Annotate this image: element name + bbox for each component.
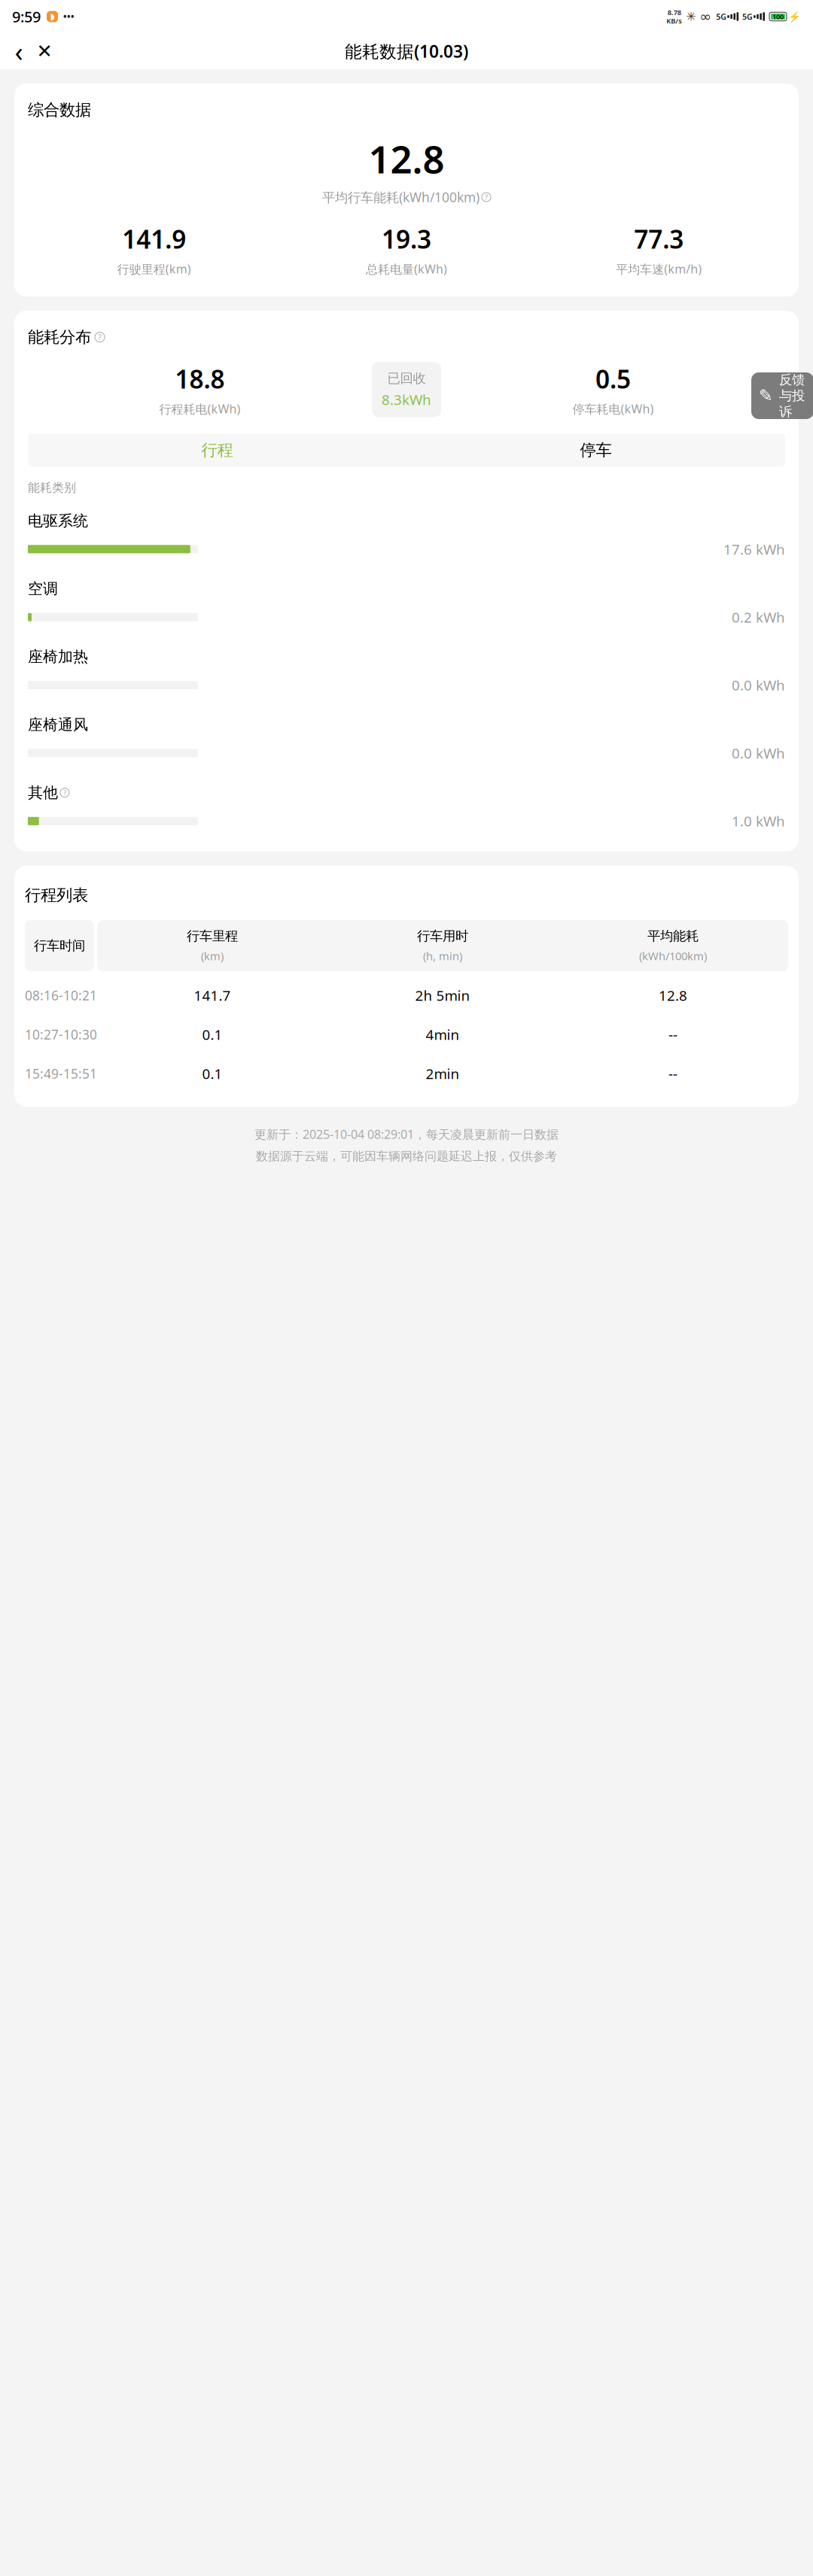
button[interactable]: 行程 xyxy=(28,434,406,467)
staticText: ••• xyxy=(63,11,75,22)
staticText: 数据源于云端，可能因车辆网络问题延迟上报，仅供参考 xyxy=(256,1149,557,1164)
button[interactable]: 反馈与投诉 xyxy=(751,372,813,419)
staticText: 行程 xyxy=(201,440,233,460)
staticText: 8.78 xyxy=(667,8,681,17)
staticText: 2h 5min xyxy=(415,986,470,1005)
staticText: ? xyxy=(98,332,102,342)
staticText: 2min xyxy=(426,1064,460,1083)
staticText: ✎ xyxy=(759,386,773,405)
staticText: 08:16-10:21 xyxy=(25,987,97,1004)
staticText: 18.8 xyxy=(175,362,225,396)
staticText: ✳ xyxy=(686,10,696,23)
staticText: 12.8 xyxy=(659,986,687,1005)
staticText: 综合数据 xyxy=(28,100,91,120)
staticText: KB/s xyxy=(666,16,682,26)
staticText: 19.3 xyxy=(382,222,431,256)
staticText: 能耗类别 xyxy=(28,480,76,495)
staticText: -- xyxy=(668,1025,677,1044)
staticText: ? xyxy=(63,788,66,797)
staticText: 行车里程 xyxy=(187,928,238,944)
staticText: ? xyxy=(485,192,488,202)
staticText: 0.0 kWh xyxy=(732,676,785,694)
staticText: 行车时间 xyxy=(34,938,85,954)
staticText: 141.9 xyxy=(122,222,186,256)
staticText: 5G xyxy=(742,11,753,22)
staticText: 座椅加热 xyxy=(28,648,88,666)
staticText: ◗ xyxy=(50,11,55,22)
staticText: 已回收 xyxy=(387,370,426,386)
staticText: 0.2 kWh xyxy=(732,608,785,626)
staticText: 0.1 xyxy=(202,1064,222,1083)
staticText: ✕ xyxy=(37,40,52,62)
staticText: -- xyxy=(668,1064,677,1083)
button[interactable]: 关闭 xyxy=(32,36,57,66)
staticText: 100 xyxy=(772,12,784,21)
staticText: 其他 xyxy=(28,783,58,802)
staticText: 座椅通风 xyxy=(28,715,88,734)
staticText: 1.0 kWh xyxy=(732,812,785,830)
staticText: 10:27-10:30 xyxy=(25,1026,97,1043)
staticText: 行程列表 xyxy=(25,885,88,905)
staticText: 5G xyxy=(716,11,727,22)
staticText: 行车用时 xyxy=(417,928,468,944)
staticText: 总耗电量(kWh) xyxy=(366,261,447,277)
staticText: 电驱系统 xyxy=(28,512,88,530)
staticText: 停车 xyxy=(580,440,612,460)
staticText: 行驶里程(km) xyxy=(117,261,191,277)
staticText: 空调 xyxy=(28,580,58,598)
staticText: 反馈与投诉 xyxy=(779,372,805,420)
staticText: (km) xyxy=(201,949,224,963)
button[interactable]: 停车 xyxy=(406,434,785,467)
staticText: 4min xyxy=(426,1025,460,1044)
button[interactable]: 返回 xyxy=(6,36,32,66)
staticText: 0.5 xyxy=(595,362,631,396)
staticText: 平均车速(km/h) xyxy=(616,261,702,277)
staticText: 能耗分布 xyxy=(28,327,91,347)
staticText: 行程耗电(kWh) xyxy=(159,401,241,417)
staticText: ⚡ xyxy=(788,11,801,22)
staticText: 77.3 xyxy=(634,222,684,256)
staticText: 141.7 xyxy=(194,986,231,1005)
staticText: 0.0 kWh xyxy=(732,744,785,762)
staticText: 平均能耗 xyxy=(647,928,699,944)
staticText: 9:59 xyxy=(12,7,41,27)
staticText: 17.6 kWh xyxy=(723,540,785,558)
staticText: (kWh/100km) xyxy=(639,949,707,963)
staticText: ∞ xyxy=(699,9,712,25)
staticText: ‹ xyxy=(15,33,23,69)
staticText: 平均行车能耗(kWh/100km) xyxy=(322,188,480,206)
staticText: (h, min) xyxy=(423,949,462,963)
staticText: 0.1 xyxy=(202,1025,222,1044)
staticText: 停车耗电(kWh) xyxy=(572,401,654,417)
staticText: 更新于：2025-10-04 08:29:01，每天凌晨更新前一日数据 xyxy=(254,1126,559,1142)
staticText: 能耗数据(10.03) xyxy=(345,40,468,62)
staticText: 8.3kWh xyxy=(382,390,431,409)
staticText: 15:49-15:51 xyxy=(25,1065,97,1082)
staticText: 12.8 xyxy=(368,133,445,184)
